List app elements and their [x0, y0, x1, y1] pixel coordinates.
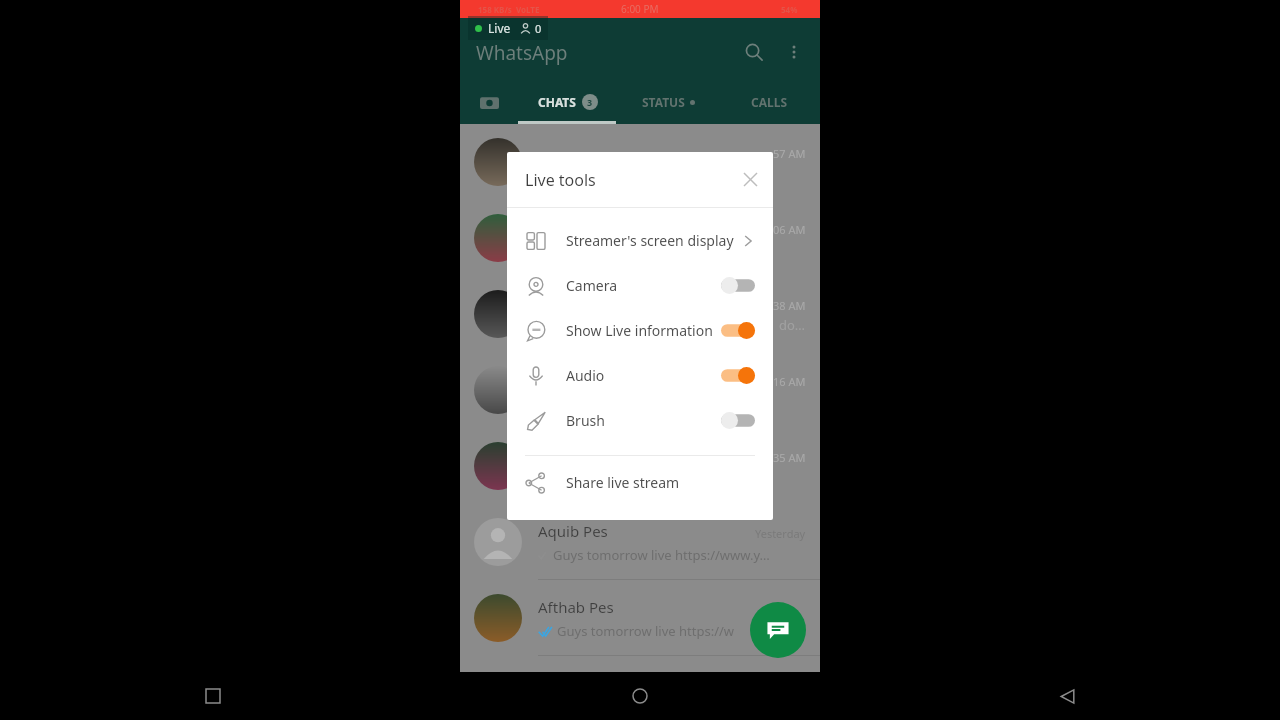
staticText: Guys tomorrow live https://www.y… — [553, 546, 770, 564]
button[interactable]: 35 AM — [460, 428, 820, 504]
button[interactable]: Aquib Pes — [460, 504, 820, 580]
button[interactable]: 16 AM — [460, 352, 820, 428]
staticText: 158 KB/s VoLTE — [478, 4, 540, 15]
staticText: 57 AM — [773, 146, 806, 161]
staticText: 3 — [587, 96, 593, 108]
staticText: STATUS — [642, 94, 685, 110]
button[interactable]: 38 AM — [460, 276, 820, 352]
staticText: 35 AM — [773, 450, 806, 465]
staticText: Show Live information — [566, 321, 721, 340]
staticText: Live — [488, 20, 511, 36]
button[interactable]: Streamer's screen display — [507, 218, 773, 263]
staticText: Camera — [566, 276, 721, 295]
button[interactable]: Show Live information — [507, 308, 773, 353]
button[interactable]: Close — [733, 162, 767, 196]
staticText: Afthab Pes — [538, 597, 614, 617]
staticText: do… — [779, 316, 806, 334]
staticText: CALLS — [751, 94, 788, 110]
staticText: Guys tomorrow live https://w — [557, 622, 735, 640]
button[interactable]: STATUS — [618, 80, 719, 124]
button[interactable]: 06 AM — [460, 200, 820, 276]
staticText: Audio — [566, 366, 721, 385]
staticText: 54% — [781, 4, 798, 15]
button[interactable]: More options — [774, 32, 814, 72]
button[interactable]: Live — [468, 16, 548, 40]
button[interactable]: Brush — [507, 398, 773, 443]
button[interactable]: Camera — [507, 263, 773, 308]
button[interactable]: CALLS — [719, 80, 820, 124]
staticText: 06 AM — [773, 222, 806, 237]
button[interactable]: CHATS — [518, 80, 618, 124]
button[interactable]: Audio — [507, 353, 773, 398]
staticText: Live tools — [525, 169, 596, 191]
staticText: CHATS — [538, 94, 576, 110]
button[interactable]: New chat — [750, 602, 806, 658]
staticText: 6:00 PM — [621, 2, 659, 16]
staticText: Brush — [566, 411, 721, 430]
staticText: 38 AM — [773, 298, 806, 313]
staticText: WhatsApp — [476, 40, 568, 66]
staticText: Share live stream — [566, 473, 755, 492]
button[interactable]: Search — [734, 32, 774, 72]
staticText: Streamer's screen display — [566, 231, 741, 250]
button[interactable]: 57 AM — [460, 124, 820, 200]
staticText: Aquib Pes — [538, 521, 608, 541]
staticText: 0 — [535, 21, 542, 36]
button[interactable]: Camera — [460, 80, 518, 124]
button[interactable]: Afthab Pes — [460, 580, 820, 656]
staticText: 16 AM — [773, 374, 806, 389]
button[interactable]: Share live stream — [507, 460, 773, 505]
button[interactable]: Recents — [193, 676, 233, 716]
staticText: Yesterday — [755, 526, 806, 541]
button[interactable]: Home — [620, 676, 660, 716]
button[interactable]: Back — [1047, 676, 1087, 716]
